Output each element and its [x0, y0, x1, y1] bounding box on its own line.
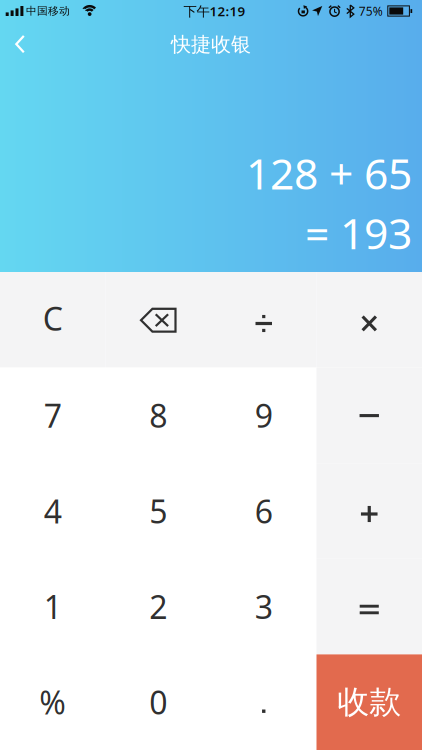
staticText: 1 [44, 585, 62, 628]
staticText: 2 [149, 585, 167, 628]
staticText: 快捷收银 [171, 32, 251, 57]
button[interactable]: Subtract [316, 368, 422, 463]
button[interactable]: Divide [211, 272, 316, 368]
button[interactable]: Back [0, 25, 45, 67]
staticText: 7 [44, 394, 62, 437]
staticText: % [39, 681, 66, 723]
staticText: C [43, 297, 63, 340]
staticText: 5 [149, 490, 167, 532]
staticText: 128 + 65 [246, 145, 412, 201]
button[interactable]: Add [316, 463, 422, 559]
staticText: 下午12:19 [183, 2, 245, 20]
button[interactable]: 9 [211, 368, 316, 463]
staticText: 4 [44, 490, 62, 532]
button[interactable]: 2 [105, 559, 211, 654]
staticText: 0 [149, 681, 167, 723]
button[interactable]: C [0, 272, 105, 368]
staticText: 75% [359, 3, 383, 19]
button[interactable]: 5 [105, 463, 211, 559]
button[interactable]: Decimal point [211, 654, 316, 750]
staticText: 9 [255, 394, 273, 437]
button[interactable]: Multiply [316, 272, 422, 368]
button[interactable]: 7 [0, 368, 105, 463]
staticText: 3 [255, 585, 273, 628]
staticText: 中国移动 [26, 4, 70, 17]
staticText: 8 [149, 394, 167, 437]
button[interactable]: Equals [316, 559, 422, 654]
button[interactable]: Delete [105, 272, 211, 368]
button[interactable]: 6 [211, 463, 316, 559]
button[interactable]: 1 [0, 559, 105, 654]
staticText: 6 [255, 490, 273, 532]
button[interactable]: 4 [0, 463, 105, 559]
button[interactable]: 3 [211, 559, 316, 654]
staticText: 收款 [337, 682, 401, 722]
button[interactable]: % [0, 654, 105, 750]
staticText: = 193 [305, 204, 412, 261]
button[interactable]: 0 [105, 654, 211, 750]
button[interactable]: 8 [105, 368, 211, 463]
button[interactable]: 收款 [316, 654, 422, 750]
